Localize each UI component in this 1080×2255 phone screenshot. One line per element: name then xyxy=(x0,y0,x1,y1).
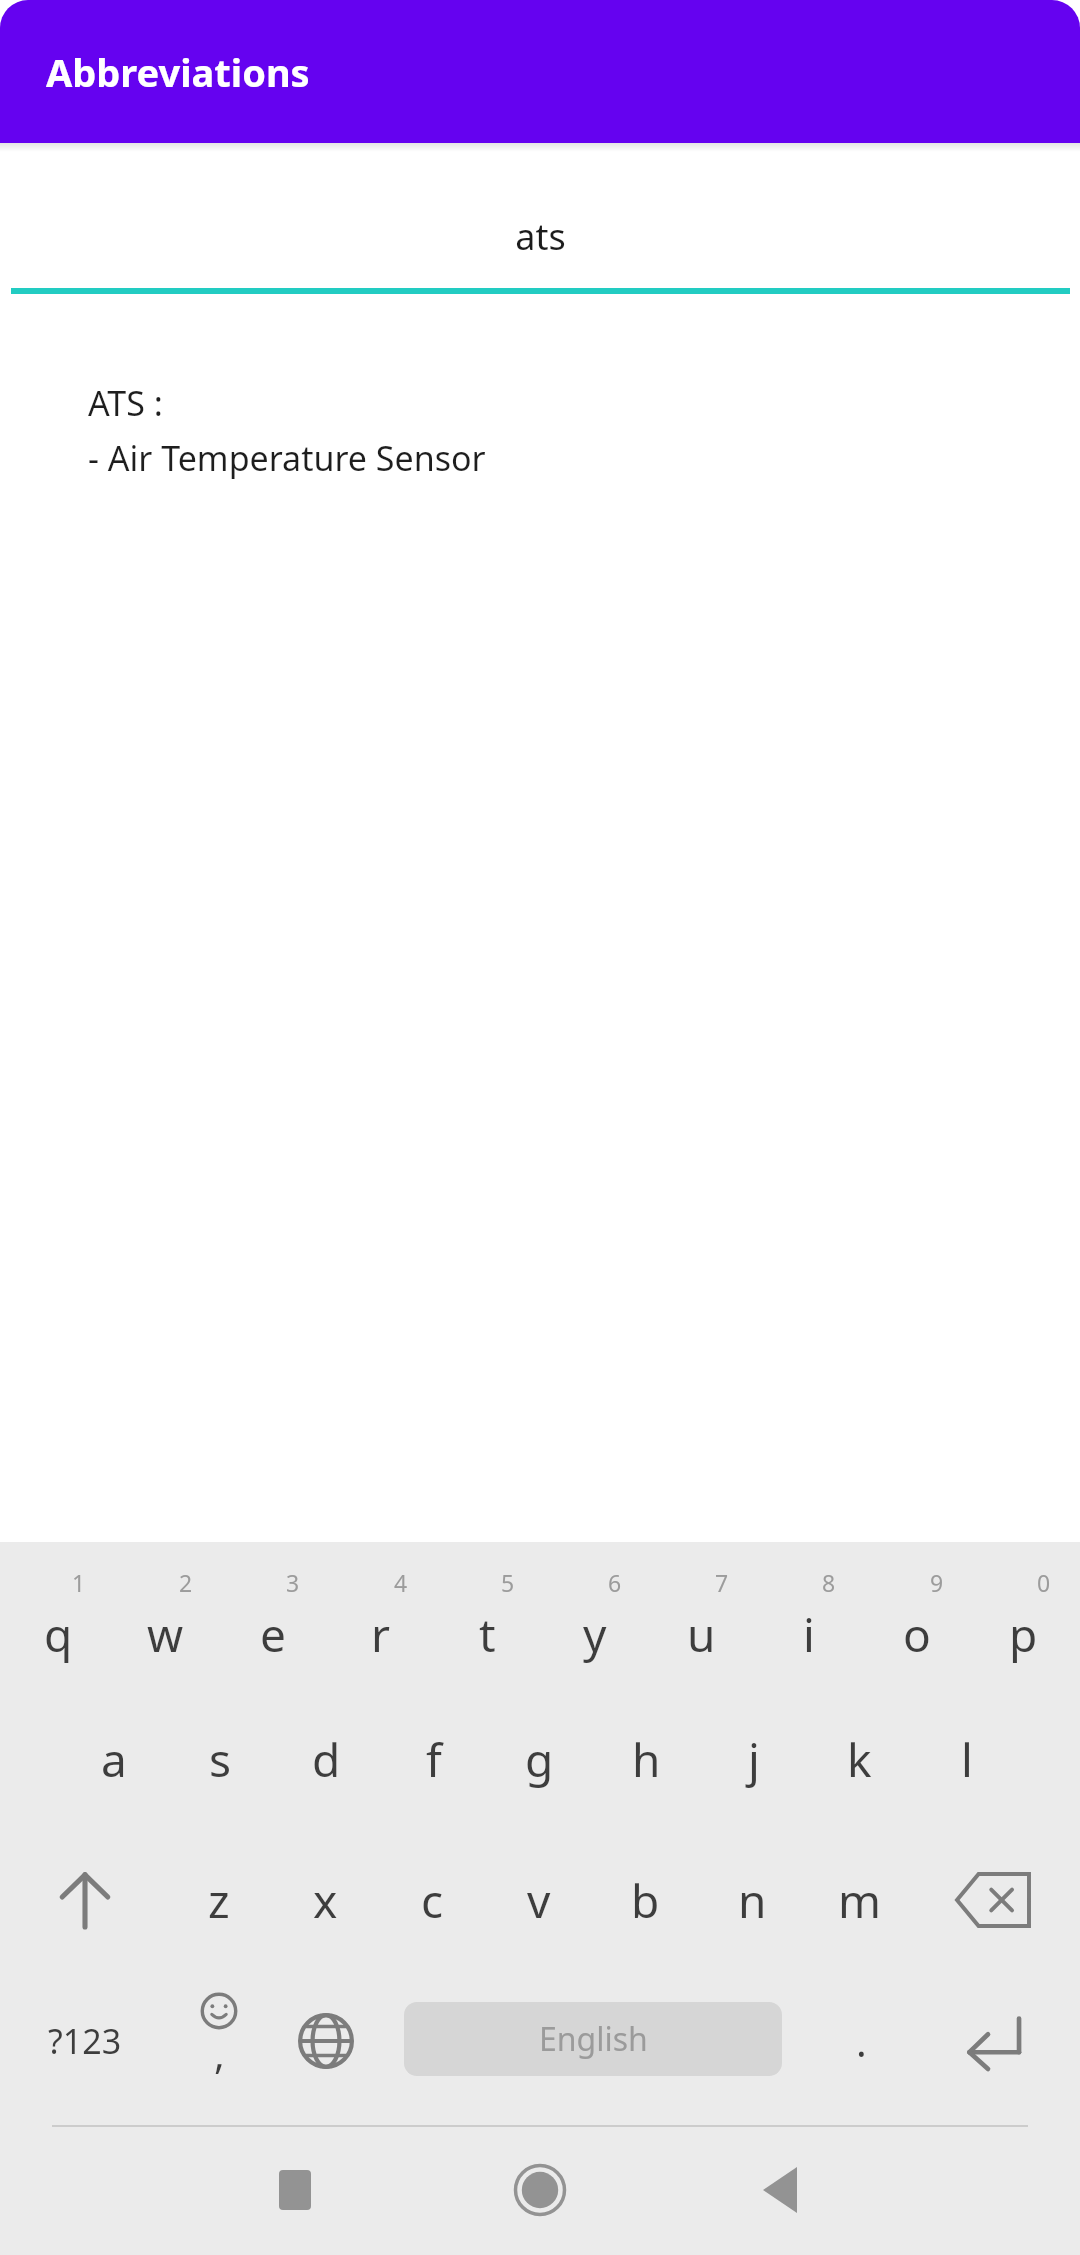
staticText: ATS : xyxy=(88,380,163,426)
button[interactable]: v xyxy=(485,1838,592,1962)
button[interactable]: d xyxy=(273,1695,380,1823)
button[interactable]: Enter xyxy=(930,1978,1056,2104)
staticText: w xyxy=(147,1603,184,1666)
button[interactable]: p xyxy=(970,1560,1077,1708)
button[interactable]: b xyxy=(592,1838,699,1962)
staticText: n xyxy=(738,1869,767,1932)
button[interactable]: a xyxy=(60,1695,167,1823)
staticText: y xyxy=(583,1603,607,1666)
staticText: 3 xyxy=(286,1567,300,1598)
staticText: l xyxy=(961,1728,973,1791)
staticText: . xyxy=(856,2014,867,2068)
button[interactable]: z xyxy=(165,1838,272,1962)
button[interactable]: English xyxy=(404,2002,782,2076)
button[interactable]: q xyxy=(5,1560,112,1708)
button[interactable]: ats xyxy=(0,185,1080,294)
button[interactable]: j xyxy=(700,1695,807,1823)
button[interactable]: c xyxy=(379,1838,486,1962)
staticText: Abbreviations xyxy=(46,46,310,98)
staticText: - Air Temperature Sensor xyxy=(88,435,486,481)
staticText: b xyxy=(631,1869,660,1932)
staticText: , xyxy=(214,2026,225,2080)
staticText: h xyxy=(632,1728,661,1791)
button[interactable]: u xyxy=(648,1560,755,1708)
button[interactable]: f xyxy=(380,1695,487,1823)
button[interactable]: s xyxy=(167,1695,274,1823)
button[interactable]: w xyxy=(112,1560,219,1708)
staticText: j xyxy=(748,1728,760,1791)
staticText: 2 xyxy=(179,1567,193,1598)
staticText: z xyxy=(208,1869,230,1932)
button[interactable]: Shift xyxy=(22,1838,148,1962)
staticText: p xyxy=(1009,1603,1038,1666)
staticText: q xyxy=(44,1603,73,1666)
staticText: k xyxy=(847,1728,872,1791)
staticText: 5 xyxy=(501,1567,515,1598)
staticText: s xyxy=(209,1728,232,1791)
button[interactable]: Abbreviations xyxy=(0,0,1080,143)
button[interactable]: Backspace xyxy=(930,1838,1056,1962)
staticText: English xyxy=(539,2017,648,2061)
staticText: ats xyxy=(515,212,566,261)
staticText: d xyxy=(312,1728,341,1791)
staticText: u xyxy=(687,1603,716,1666)
staticText: c xyxy=(421,1869,444,1932)
button[interactable]: e xyxy=(219,1560,326,1708)
button[interactable]: t xyxy=(434,1560,541,1708)
staticText: ?123 xyxy=(48,2018,122,2064)
button[interactable]: k xyxy=(806,1695,913,1823)
button[interactable]: . xyxy=(806,1978,916,2104)
staticText: g xyxy=(525,1728,554,1791)
button[interactable]: o xyxy=(863,1560,970,1708)
staticText: i xyxy=(803,1603,815,1666)
button[interactable]: Back xyxy=(715,2125,845,2255)
button[interactable]: ?123 xyxy=(10,1978,160,2104)
button[interactable]: Change keyboard language xyxy=(272,1978,380,2104)
staticText: o xyxy=(903,1603,931,1666)
staticText: 6 xyxy=(608,1567,622,1598)
staticText: m xyxy=(838,1869,882,1932)
button[interactable]: m xyxy=(806,1838,913,1962)
button[interactable]: x xyxy=(272,1838,379,1962)
button[interactable]: r xyxy=(327,1560,434,1708)
staticText: 7 xyxy=(715,1567,729,1598)
staticText: 1 xyxy=(72,1567,86,1598)
staticText: x xyxy=(313,1869,338,1932)
button[interactable]: n xyxy=(699,1838,806,1962)
staticText: 9 xyxy=(930,1567,944,1598)
button[interactable]: g xyxy=(486,1695,593,1823)
staticText: a xyxy=(101,1728,127,1791)
staticText: v xyxy=(527,1869,551,1932)
button[interactable]: y xyxy=(541,1560,648,1708)
staticText: f xyxy=(426,1728,442,1791)
staticText: 8 xyxy=(822,1567,836,1598)
button[interactable]: i xyxy=(755,1560,862,1708)
staticText: e xyxy=(260,1603,286,1666)
button[interactable]: Recent apps xyxy=(230,2125,360,2255)
staticText: 0 xyxy=(1037,1567,1051,1598)
button[interactable]: l xyxy=(913,1695,1020,1823)
staticText: r xyxy=(371,1603,390,1666)
button[interactable]: Home xyxy=(475,2125,605,2255)
staticText: t xyxy=(479,1603,496,1666)
staticText: 4 xyxy=(394,1567,408,1598)
button[interactable]: h xyxy=(593,1695,700,1823)
button[interactable]: Emoji and comma xyxy=(165,1978,273,2104)
